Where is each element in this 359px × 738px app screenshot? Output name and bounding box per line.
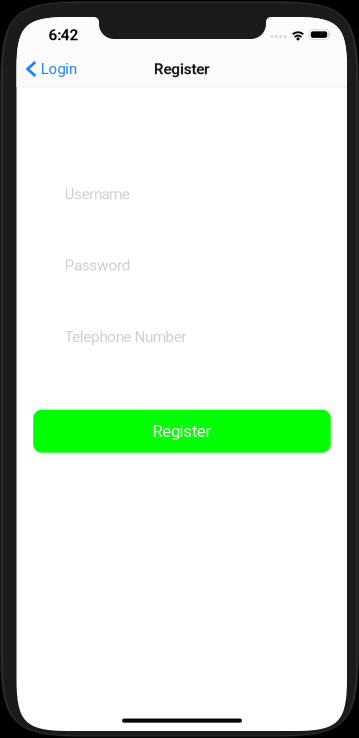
- button[interactable]: Register: [33, 410, 331, 453]
- staticText: Password: [64, 256, 131, 274]
- staticText: Telephone Number: [64, 328, 186, 346]
- staticText: Register: [154, 60, 210, 78]
- staticText: 6:42: [48, 26, 78, 44]
- button[interactable]: Login: [26, 53, 100, 85]
- staticText: Register: [152, 421, 211, 441]
- staticText: Username: [64, 185, 130, 203]
- staticText: Login: [41, 60, 77, 78]
